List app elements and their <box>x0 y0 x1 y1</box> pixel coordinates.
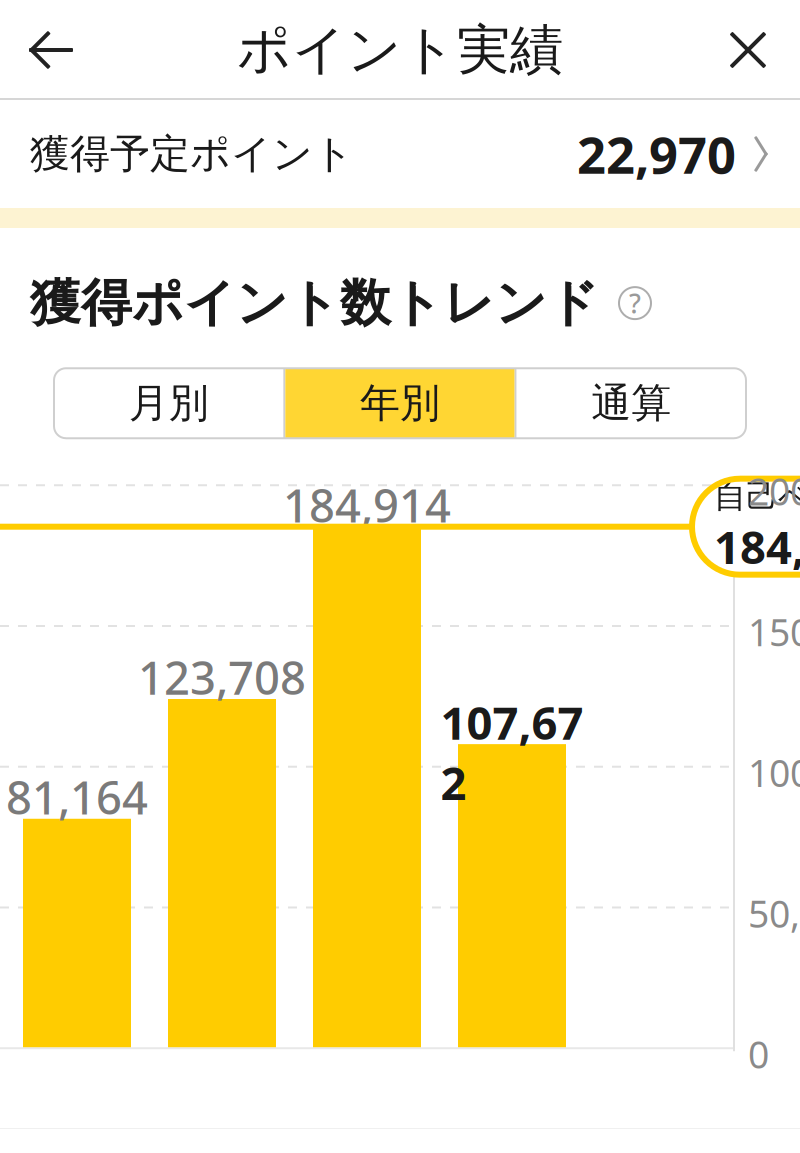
staticText: 81,164 <box>6 767 148 827</box>
staticText: 獲得予定ポイント <box>30 129 354 178</box>
staticText: 107,672 <box>440 692 583 812</box>
staticText: 150,000 <box>748 607 800 657</box>
staticText: 184,914 <box>283 475 451 535</box>
button[interactable]: ヘルプ <box>615 283 655 323</box>
staticText: 184,914 <box>714 516 800 576</box>
staticText: 年別 <box>360 379 440 428</box>
button[interactable]: 通算 <box>517 368 746 438</box>
staticText: 0 <box>748 1029 769 1079</box>
staticText: 獲得ポイント数トレンド <box>30 272 599 334</box>
staticText: 22,970 <box>577 120 736 188</box>
button[interactable]: 閉じる <box>696 0 800 100</box>
staticText: 100,000 <box>748 748 800 797</box>
staticText: 自己ベスト <box>714 477 800 516</box>
staticText: ポイント実績 <box>237 17 563 83</box>
staticText: 月別 <box>129 379 209 428</box>
staticText: 50,000 <box>748 888 800 938</box>
button[interactable]: 年別 <box>285 368 515 438</box>
staticText: ? <box>629 285 641 321</box>
staticText: 通算 <box>591 379 671 428</box>
button[interactable]: 戻る <box>0 0 104 100</box>
button[interactable]: 月別 <box>54 368 283 438</box>
staticText: 200,000 <box>748 466 800 516</box>
staticText: 123,708 <box>138 647 306 707</box>
button[interactable]: 獲得予定ポイント <box>0 100 800 208</box>
